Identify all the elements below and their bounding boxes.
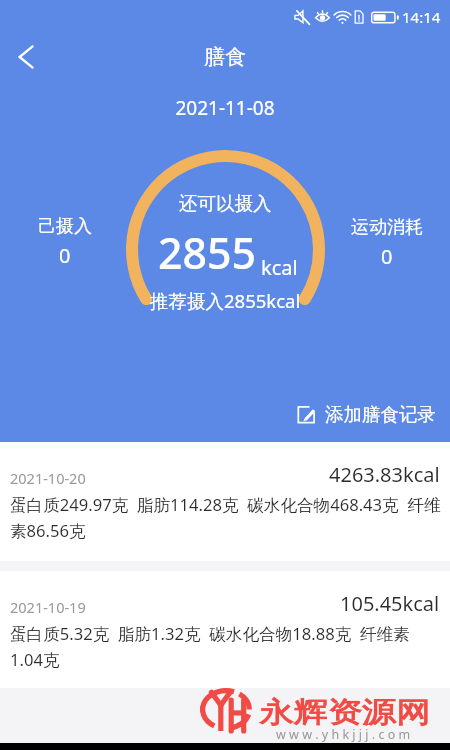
staticText: kcal <box>261 254 298 281</box>
button[interactable]: 2021-10-19 <box>0 571 450 688</box>
staticText: 己摄入 <box>38 215 92 238</box>
staticText: 还可以摄入 <box>179 192 272 215</box>
staticText: 4263.83kcal <box>329 461 440 486</box>
staticText: 膳食 <box>204 44 246 70</box>
staticText: 蛋白质249.97克 脂肪114.28克 碳水化合物468.43克 纤维 素86… <box>10 493 450 542</box>
staticText: w w w . y h k j j j . c o m <box>276 726 411 743</box>
staticText: 2855 <box>158 223 256 282</box>
staticText: 2021-11-08 <box>0 95 450 121</box>
staticText: 添加膳食记录 <box>325 403 436 426</box>
button[interactable]: Back <box>0 33 52 81</box>
staticText: 2021-10-19 <box>10 597 86 617</box>
staticText: 0 <box>59 242 71 269</box>
button[interactable]: 添加膳食记录 <box>287 398 450 431</box>
staticText: 0 <box>381 243 393 270</box>
staticText: 运动消耗 <box>351 216 423 239</box>
button[interactable]: 2021-10-20 <box>0 442 450 561</box>
staticText: 14:14 <box>402 7 441 27</box>
staticText: 永辉资源网 <box>259 694 430 730</box>
staticText: 推荐摄入2855kcal <box>150 288 301 313</box>
staticText: 105.45kcal <box>340 590 440 615</box>
staticText: 蛋白质5.32克 脂肪1.32克 碳水化合物18.88克 纤维素 1.04克 <box>10 622 450 671</box>
staticText: 2021-10-20 <box>10 468 86 488</box>
